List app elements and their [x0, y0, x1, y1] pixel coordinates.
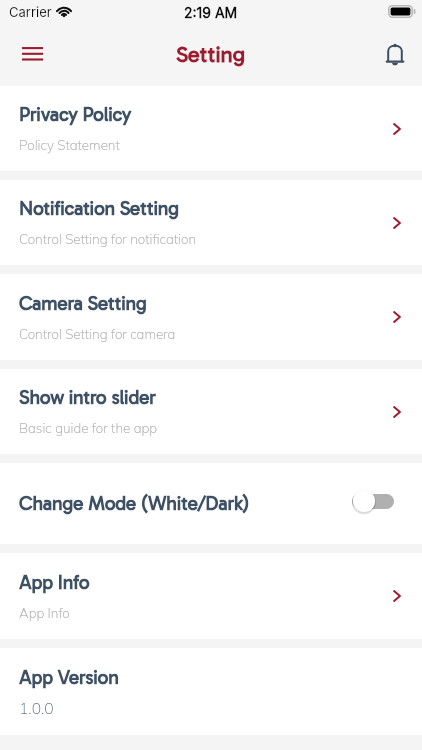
staticText: Camera Setting	[19, 292, 147, 315]
staticText: App Info	[19, 605, 70, 622]
staticText: Control Setting for notification	[19, 231, 197, 248]
button[interactable]: Change mode toggle, off	[352, 489, 394, 513]
staticText: Setting	[176, 41, 246, 67]
button[interactable]: App Version	[0, 648, 422, 735]
button[interactable]: Change Mode (White/Dark)	[0, 463, 422, 544]
staticText: App Info	[19, 571, 90, 594]
button[interactable]: Open navigation menu	[5, 30, 59, 78]
button[interactable]: App Info	[0, 553, 422, 639]
button[interactable]: Privacy Policy	[0, 86, 422, 171]
button[interactable]: Show intro slider	[0, 369, 422, 454]
staticText: Basic guide for the app	[19, 420, 158, 437]
staticText: Carrier	[9, 4, 52, 20]
staticText: 2:19 AM	[184, 4, 238, 21]
staticText: Privacy Policy	[19, 103, 132, 126]
staticText: App Version	[19, 666, 119, 689]
staticText: Change Mode (White/Dark)	[19, 492, 250, 515]
staticText: Show intro slider	[19, 386, 156, 409]
button[interactable]: Notification Setting	[0, 180, 422, 265]
staticText: Notification Setting	[19, 197, 179, 220]
button[interactable]: Notifications	[373, 33, 417, 77]
staticText: Policy Statement	[19, 137, 120, 154]
staticText: Control Setting for camera	[19, 326, 176, 343]
staticText: 1.0.0	[19, 698, 54, 718]
button[interactable]: Camera Setting	[0, 274, 422, 360]
